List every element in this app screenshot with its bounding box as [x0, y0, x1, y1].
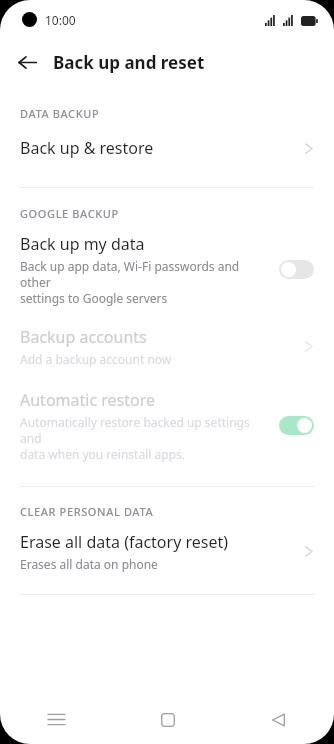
staticText: Automatically restore backed up settings…	[20, 414, 273, 462]
staticText: Back up my data	[20, 233, 145, 255]
staticText: Back up & restore	[20, 137, 304, 159]
staticText: CLEAR PERSONAL DATA	[20, 504, 154, 519]
button[interactable]: Erase all data (factory reset)	[0, 531, 334, 572]
button[interactable]: Off	[279, 260, 314, 279]
button[interactable]: Recent apps	[0, 695, 112, 744]
button[interactable]: Back up my data	[0, 233, 334, 306]
button[interactable]: Home	[112, 695, 223, 744]
staticText: Automatic restore	[20, 389, 155, 411]
button[interactable]: Back up & restore	[0, 135, 334, 161]
staticText: 10:00	[45, 12, 76, 28]
button[interactable]: Back	[11, 46, 43, 78]
staticText: DATA BACKUP	[20, 106, 100, 121]
button[interactable]: Automatic restore	[0, 389, 334, 462]
button[interactable]: Back	[223, 695, 334, 744]
button[interactable]: Backup accounts	[0, 326, 334, 367]
staticText: Erases all data on phone	[20, 556, 158, 572]
staticText: GOOGLE BACKUP	[20, 206, 119, 221]
staticText: Backup accounts	[20, 326, 147, 348]
staticText: Back up app data, Wi-Fi passwords and ot…	[20, 258, 273, 306]
staticText: Back up and reset	[53, 51, 205, 74]
staticText: Erase all data (factory reset)	[20, 531, 229, 553]
staticText: Add a backup account now	[20, 351, 172, 367]
button[interactable]: On	[279, 416, 314, 435]
